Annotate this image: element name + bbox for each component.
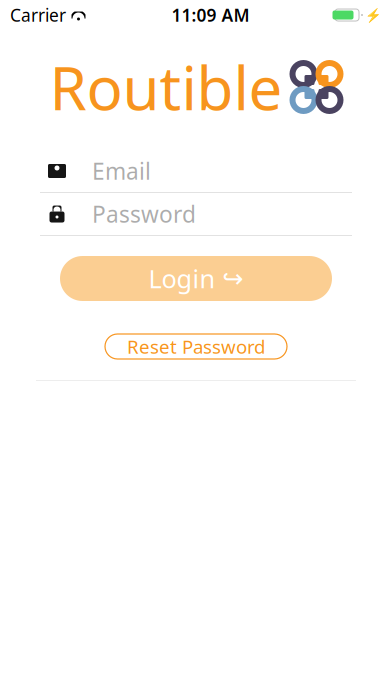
staticText: Routible <box>49 47 282 127</box>
staticText: ↪ <box>222 264 243 293</box>
staticText: ⚡ <box>365 7 382 23</box>
staticText: 11:09 AM <box>171 3 249 26</box>
staticText: Carrier <box>10 3 66 26</box>
staticText: Email <box>92 156 151 186</box>
staticText: Reset Password <box>127 334 265 359</box>
staticText: Login <box>148 262 215 295</box>
staticText: Password <box>92 199 196 229</box>
button[interactable]: Login <box>60 256 332 301</box>
button[interactable]: Reset Password <box>105 334 287 359</box>
